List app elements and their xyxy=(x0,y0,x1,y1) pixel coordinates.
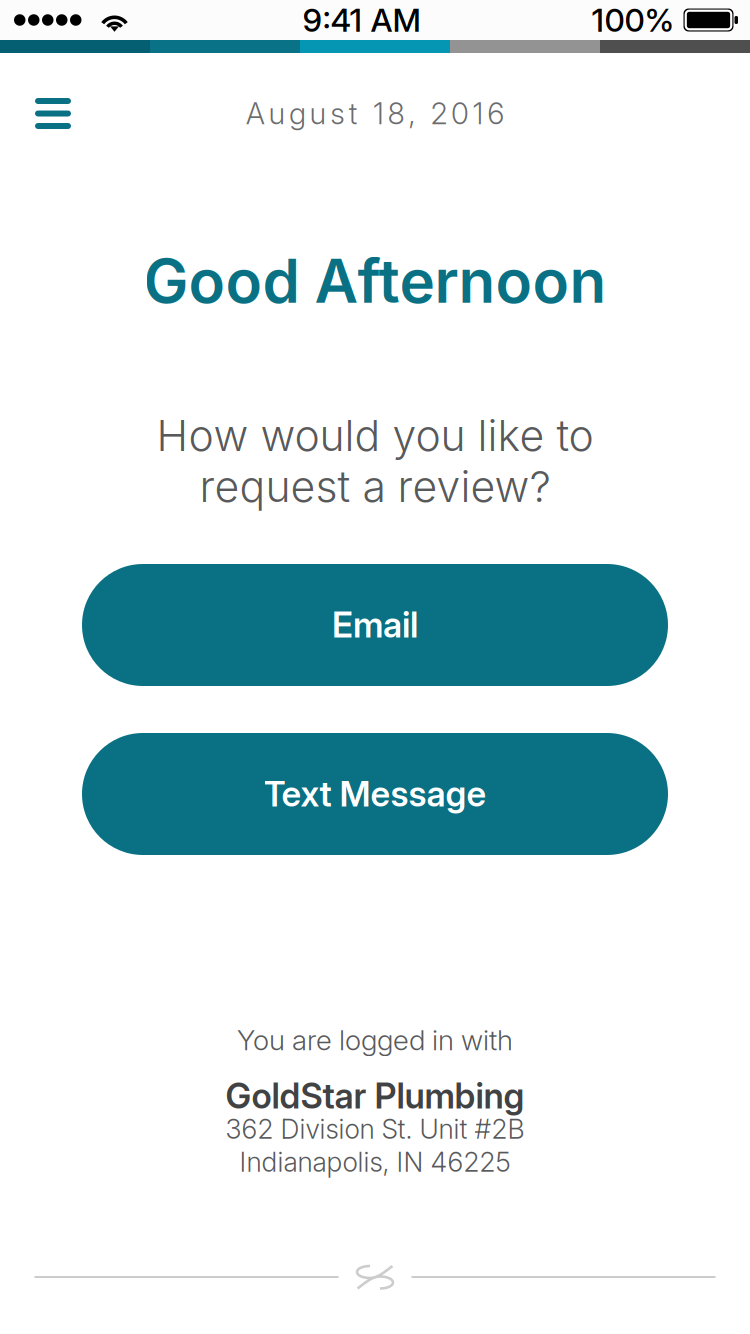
button[interactable]: Menu xyxy=(0,85,95,142)
button[interactable]: Email xyxy=(82,564,668,686)
staticText: request a review? xyxy=(199,461,550,512)
staticText: How would you like to xyxy=(156,410,593,461)
staticText: You are logged in with xyxy=(237,1023,513,1057)
staticText: August 18, 2016 xyxy=(246,96,504,131)
staticText: 100% xyxy=(591,1,674,39)
staticText: 9:41 AM xyxy=(302,1,420,39)
staticText: Email xyxy=(332,604,418,646)
button[interactable]: Text Message xyxy=(82,733,668,855)
staticText: Text Message xyxy=(263,773,486,815)
staticText: GoldStar Plumbing xyxy=(225,1075,524,1117)
staticText: Good Afternoon xyxy=(143,245,606,317)
staticText: Indianapolis, IN 46225 xyxy=(239,1146,510,1178)
staticText: 362 Division St. Unit #2B xyxy=(225,1113,524,1145)
